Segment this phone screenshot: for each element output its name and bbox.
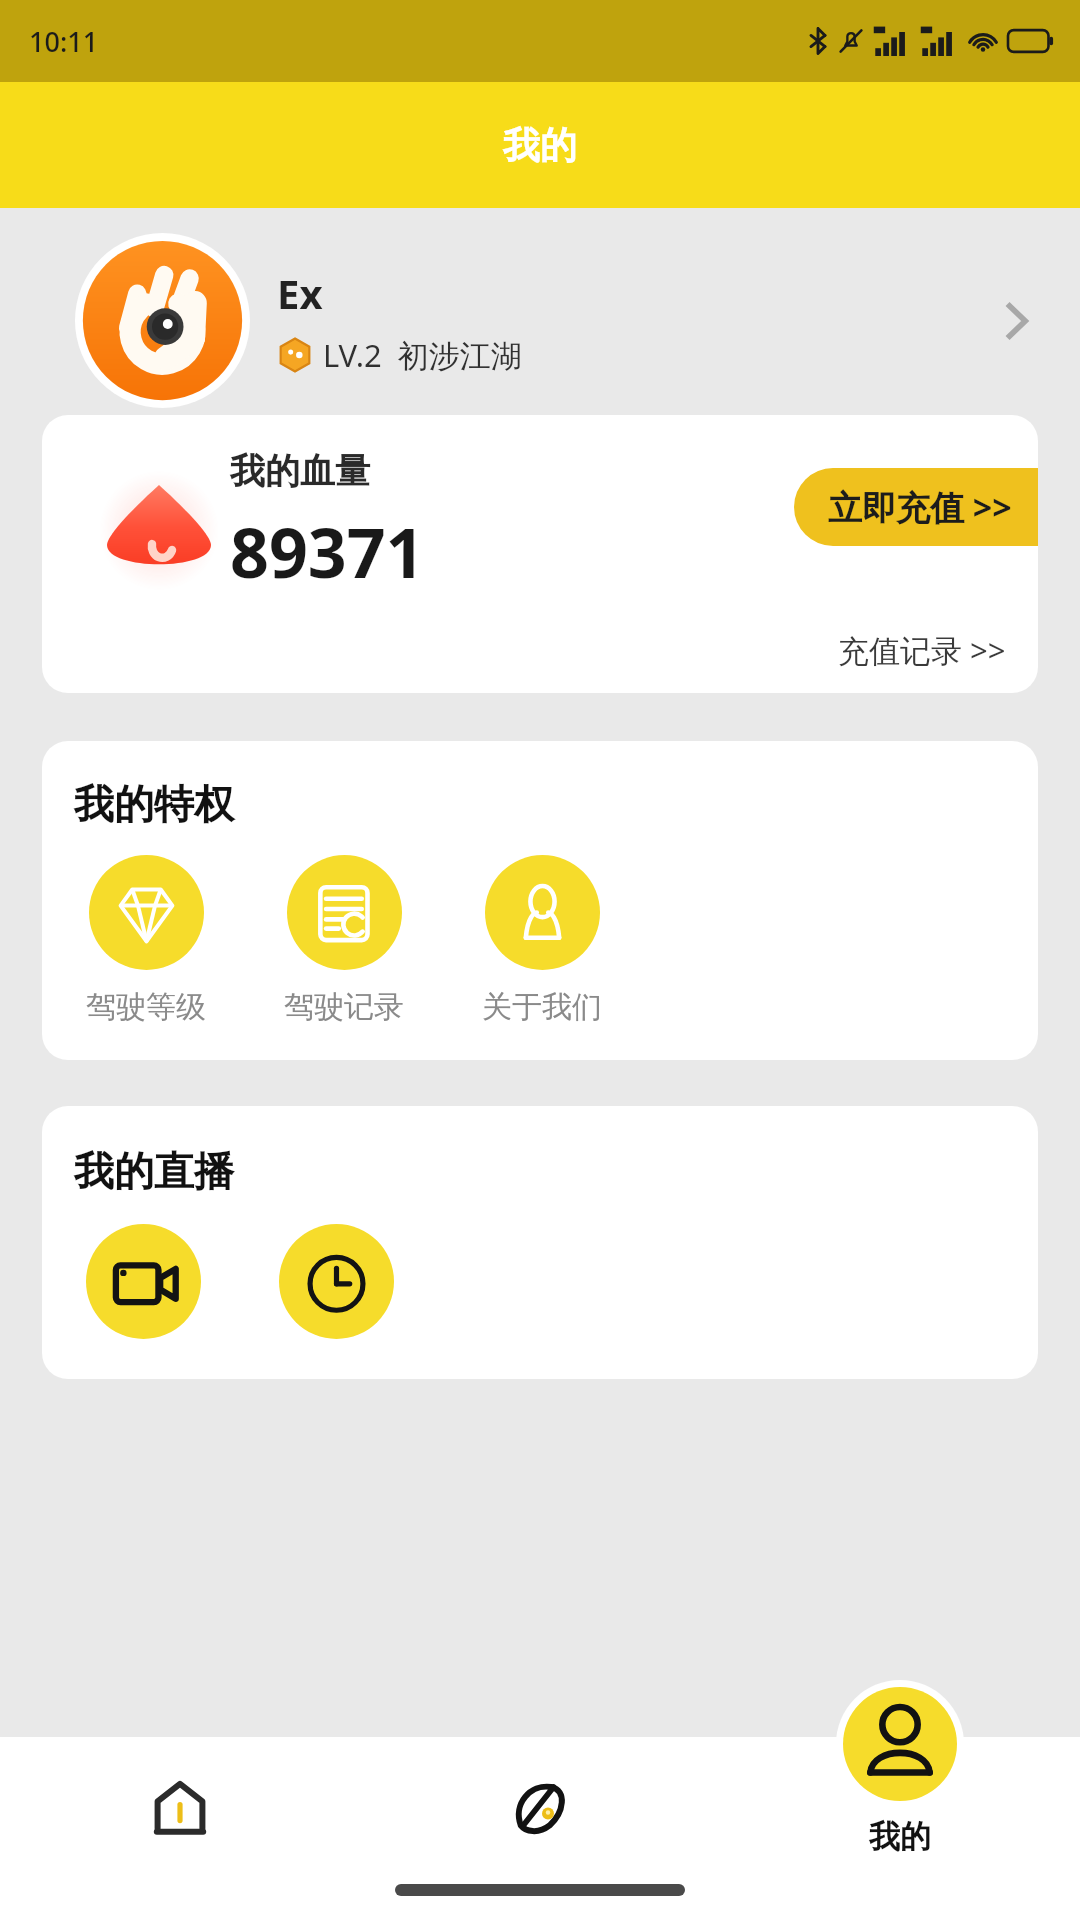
- staticText: 我的血量: [230, 449, 370, 493]
- button[interactable]: 充值记录 >>: [838, 629, 1038, 693]
- button[interactable]: Live history: [279, 1224, 394, 1339]
- button[interactable]: 驾驶等级: [86, 855, 206, 1026]
- staticText: 我的直播: [74, 1146, 234, 1196]
- staticText: 充值记录 >>: [838, 629, 1006, 671]
- button[interactable]: Profile details: [988, 291, 1048, 351]
- button[interactable]: 关于我们: [482, 855, 602, 1026]
- staticText: 关于我们: [482, 988, 602, 1026]
- staticText: 我的特权: [74, 779, 234, 829]
- staticText: Ex: [277, 266, 323, 320]
- button[interactable]: Navigation tab: [0, 1737, 360, 1920]
- staticText: 我的: [869, 1817, 931, 1856]
- button[interactable]: 立即充值 >>: [794, 468, 1038, 546]
- button[interactable]: Start live video: [86, 1224, 201, 1339]
- staticText: 驾驶记录: [284, 988, 404, 1026]
- staticText: 10:11: [29, 23, 99, 60]
- button[interactable]: Ex: [0, 233, 1080, 408]
- button[interactable]: Navigation tab: [360, 1737, 720, 1920]
- staticText: 驾驶等级: [86, 988, 206, 1026]
- button[interactable]: 我的: [836, 1680, 964, 1856]
- staticText: 89371: [230, 505, 425, 598]
- staticText: 我的: [503, 122, 577, 169]
- staticText: 立即充值 >>: [828, 484, 1012, 530]
- staticText: LV.2 初涉江湖: [323, 334, 522, 376]
- button[interactable]: 驾驶记录: [284, 855, 404, 1026]
